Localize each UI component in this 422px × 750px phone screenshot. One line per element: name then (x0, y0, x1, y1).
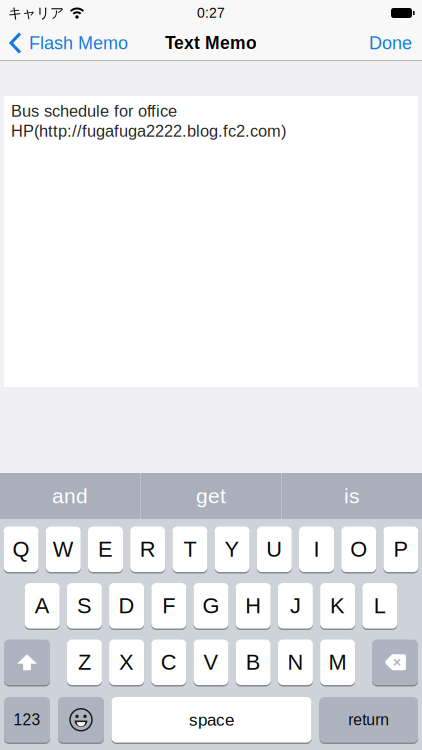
button[interactable]: H (236, 583, 271, 628)
staticText: is (344, 484, 360, 508)
button[interactable]: D (109, 583, 144, 628)
button[interactable]: Memo text (4, 96, 418, 387)
staticText: 0:27 (197, 5, 225, 21)
staticText: I (313, 537, 319, 561)
button[interactable]: C (151, 639, 186, 685)
staticText: O (350, 537, 367, 561)
button[interactable]: O (341, 526, 376, 572)
staticText: S (77, 594, 92, 618)
staticText: H (245, 594, 261, 618)
staticText: Bus schedule for office (11, 102, 177, 120)
staticText: Q (13, 537, 30, 561)
staticText: L (374, 594, 386, 618)
button[interactable]: Delete (372, 639, 418, 685)
button[interactable]: is (282, 473, 422, 519)
staticText: V (203, 650, 218, 674)
button[interactable]: E (88, 526, 123, 572)
button[interactable]: B (236, 639, 271, 685)
staticText: G (202, 594, 219, 618)
staticText: Z (78, 650, 91, 674)
staticText: K (330, 594, 345, 618)
staticText: Flash Memo (29, 33, 128, 53)
button[interactable]: P (383, 526, 418, 572)
button[interactable]: R (130, 526, 165, 572)
button[interactable]: Numbers (4, 697, 50, 742)
button[interactable]: F (151, 583, 186, 628)
staticText: M (329, 650, 347, 674)
button[interactable]: J (278, 583, 313, 628)
staticText: キャリア (8, 4, 64, 22)
staticText: F (162, 594, 175, 618)
staticText: return (348, 711, 389, 729)
button[interactable]: V (193, 639, 228, 685)
staticText: U (266, 537, 282, 561)
button[interactable]: S (67, 583, 102, 628)
button[interactable]: Emoji (58, 697, 104, 742)
button[interactable]: X (109, 639, 144, 685)
button[interactable]: U (257, 526, 292, 572)
staticText: and (52, 484, 88, 508)
staticText: X (119, 650, 134, 674)
button[interactable]: Z (67, 639, 102, 685)
staticText: R (140, 537, 156, 561)
staticText: C (161, 650, 177, 674)
staticText: E (98, 537, 113, 561)
button[interactable]: and (0, 473, 140, 519)
button[interactable]: A (25, 583, 60, 628)
staticText: Done (369, 33, 412, 53)
button[interactable]: space (111, 697, 311, 742)
staticText: B (246, 650, 261, 674)
staticText: Text Memo (165, 33, 257, 53)
staticText: J (290, 594, 301, 618)
button[interactable]: L (362, 583, 397, 628)
button[interactable]: K (320, 583, 355, 628)
button[interactable]: W (46, 526, 81, 572)
button[interactable]: Shift (4, 639, 50, 685)
staticText: T (183, 537, 196, 561)
staticText: space (189, 710, 234, 729)
button[interactable]: Flash Memo (9, 32, 128, 54)
button[interactable]: return (319, 697, 418, 742)
button[interactable]: I (299, 526, 334, 572)
button[interactable]: Q (4, 526, 39, 572)
button[interactable]: N (278, 639, 313, 685)
button[interactable]: T (172, 526, 207, 572)
staticText: get (196, 484, 226, 508)
button[interactable]: get (141, 473, 281, 519)
staticText: Y (225, 537, 240, 561)
staticText: P (393, 537, 408, 561)
staticText: W (53, 537, 74, 561)
staticText: D (119, 594, 135, 618)
button[interactable]: Done (369, 33, 412, 53)
button[interactable]: M (320, 639, 355, 685)
staticText: HP(http://fugafuga2222.blog.fc2.com) (11, 122, 286, 140)
staticText: N (287, 650, 303, 674)
staticText: 123 (13, 711, 40, 728)
staticText: A (35, 594, 50, 618)
button[interactable]: Y (215, 526, 250, 572)
button[interactable]: G (193, 583, 228, 628)
